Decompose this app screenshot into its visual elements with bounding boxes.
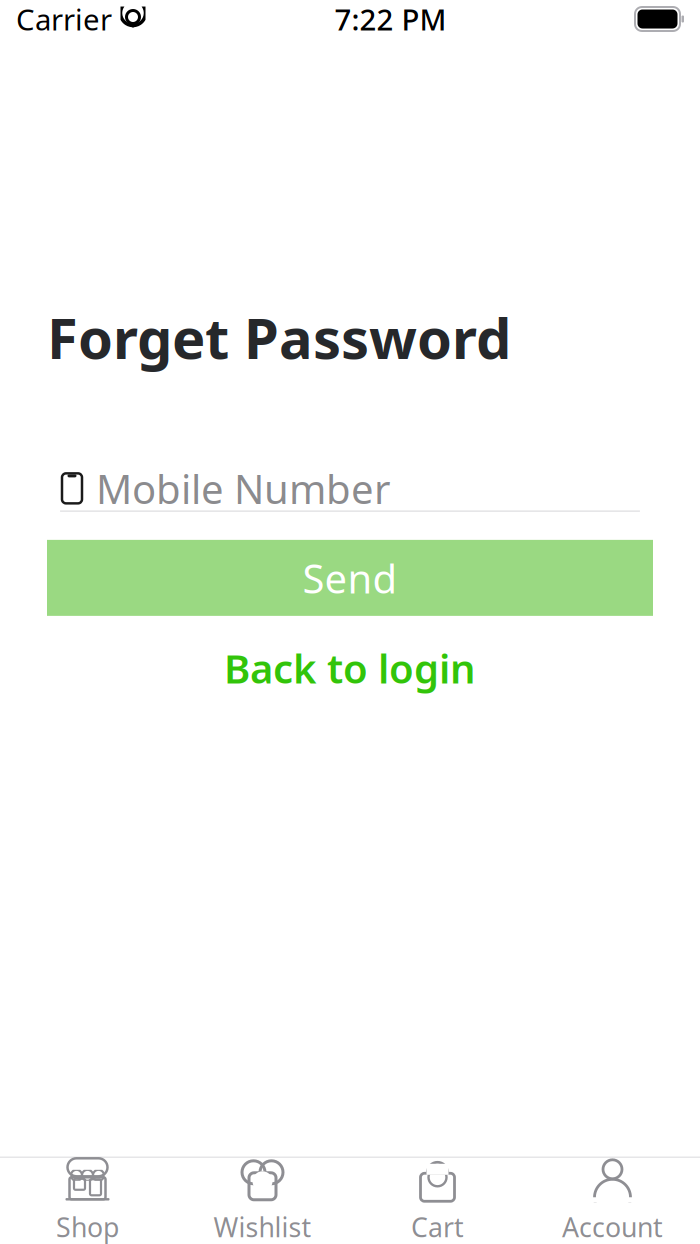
staticText: Send xyxy=(302,551,397,604)
button[interactable]: Cart xyxy=(350,1159,525,1243)
staticText: Carrier xyxy=(16,0,112,38)
button[interactable]: Account xyxy=(525,1159,700,1243)
staticText: 7:22 PM xyxy=(334,0,446,38)
button[interactable]: Wishlist xyxy=(175,1159,350,1243)
staticText: Forget Password xyxy=(47,300,511,374)
button[interactable]: Back to login xyxy=(47,643,653,693)
staticText: Wishlist xyxy=(213,1209,311,1244)
button[interactable]: Shop xyxy=(0,1159,175,1243)
button[interactable]: Send xyxy=(47,540,653,616)
staticText: Back to login xyxy=(224,641,476,694)
staticText: Account xyxy=(562,1209,663,1244)
staticText: Shop xyxy=(56,1209,119,1244)
staticText: Cart xyxy=(411,1209,464,1244)
staticText: Mobile Number xyxy=(96,462,391,515)
